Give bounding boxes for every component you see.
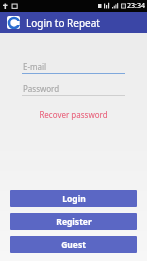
staticText: Register xyxy=(56,216,92,228)
staticText: Login xyxy=(62,193,86,205)
button[interactable]: E-mail xyxy=(22,61,125,74)
button[interactable]: Register xyxy=(10,213,137,230)
button[interactable]: App icon xyxy=(7,16,20,29)
button[interactable]: Recover password xyxy=(35,107,112,122)
button[interactable]: Password xyxy=(22,83,125,96)
staticText: Password xyxy=(23,83,60,94)
staticText: Login to Repeat xyxy=(26,16,100,30)
staticText: Guest xyxy=(61,239,86,251)
button[interactable]: Login xyxy=(10,190,137,207)
staticText: E-mail xyxy=(23,61,47,72)
button[interactable]: Guest xyxy=(10,236,137,253)
staticText: 23:34 xyxy=(127,1,145,11)
